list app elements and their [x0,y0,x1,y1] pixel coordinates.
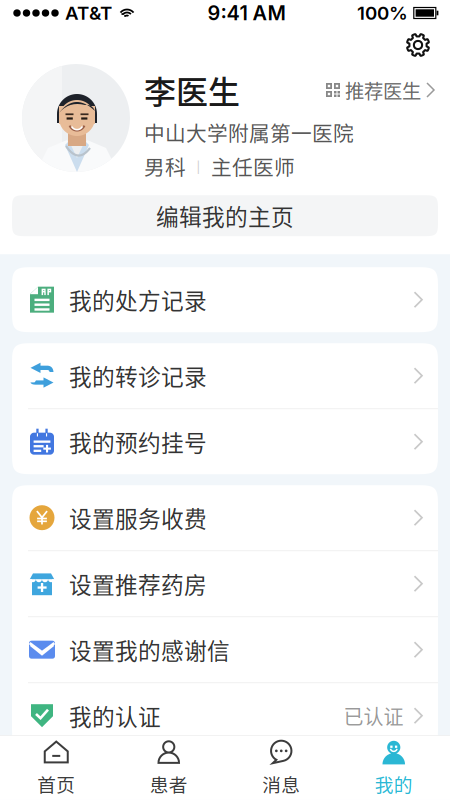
button[interactable]: 消息 [225,736,337,800]
button[interactable]: 我的认证 [12,683,438,748]
staticText: 中山大学附属第一医院 [144,117,354,147]
staticText: 李医生 [144,67,240,113]
staticText: 编辑我的主页 [156,199,294,232]
staticText: 设置我的感谢信 [69,633,230,666]
button[interactable]: 我的 [337,736,450,800]
button[interactable]: 设置服务收费 [12,485,438,550]
button[interactable]: Settings [398,26,438,64]
staticText: 设置服务收费 [69,501,207,534]
staticText: 患者 [150,770,188,797]
staticText: 我的 [375,770,413,797]
staticText: 丨 [191,156,206,177]
button[interactable]: 推荐医生 [326,64,436,104]
button[interactable]: 我的处方记录 [12,267,438,332]
staticText: 主任医师 [211,151,295,181]
staticText: 我的认证 [69,699,161,732]
staticText: 已认证 [343,701,403,730]
staticText: 消息 [262,770,300,797]
staticText: 100% [357,2,408,24]
staticText: 男科 [144,151,186,181]
staticText: 我的转诊记录 [69,359,207,392]
staticText: 首页 [37,770,75,797]
button[interactable]: 编辑我的主页 [12,195,438,236]
button[interactable]: 我的转诊记录 [12,343,438,408]
staticText: 我的处方记录 [69,283,207,316]
button[interactable]: 患者 [112,736,225,800]
button[interactable]: 设置推荐药房 [12,551,438,616]
button[interactable]: 首页 [0,736,112,800]
staticText: 我的预约挂号 [69,425,207,458]
button[interactable]: 我的预约挂号 [12,409,438,474]
staticText: 9:41 AM [207,1,285,25]
staticText: AT&T [65,2,112,24]
staticText: 设置推荐药房 [69,567,207,600]
staticText: 推荐医生 [345,76,421,104]
button[interactable]: 设置我的感谢信 [12,617,438,682]
